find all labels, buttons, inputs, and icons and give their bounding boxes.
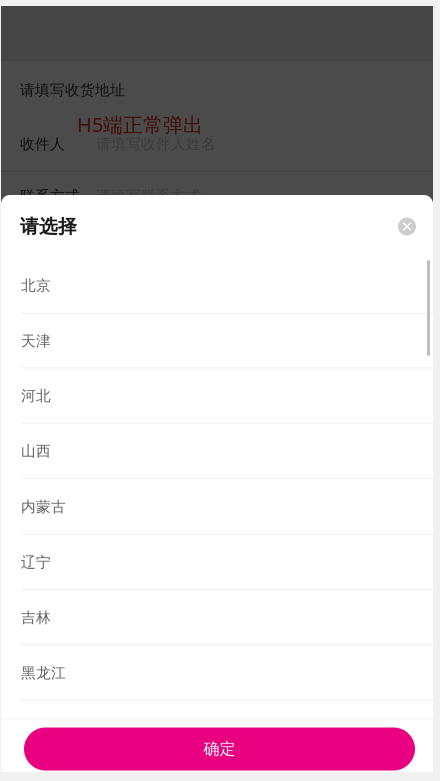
button[interactable]: 确定 bbox=[24, 727, 415, 770]
button[interactable]: 山西 bbox=[1, 423, 433, 479]
button[interactable]: 内蒙古 bbox=[1, 479, 433, 535]
staticText: 收件人 bbox=[20, 135, 65, 153]
staticText: 请填写收件人姓名 bbox=[96, 135, 216, 153]
staticText: H5端正常弹出 bbox=[77, 111, 203, 138]
staticText: 吉林 bbox=[21, 608, 51, 626]
staticText: 联系方式 bbox=[20, 187, 80, 205]
button[interactable]: 关闭 bbox=[390, 209, 424, 243]
staticText: 请选择 bbox=[20, 215, 77, 238]
button[interactable]: 辽宁 bbox=[1, 535, 433, 590]
staticText: 山西 bbox=[21, 442, 51, 460]
staticText: 请填写联系方式 bbox=[96, 187, 201, 205]
staticText: 河北 bbox=[21, 387, 51, 405]
staticText: 内蒙古 bbox=[21, 498, 66, 516]
staticText: 黑龙江 bbox=[21, 664, 66, 682]
staticText: 天津 bbox=[21, 332, 51, 350]
button[interactable]: 黑龙江 bbox=[1, 645, 433, 701]
button[interactable]: 北京 bbox=[1, 257, 433, 314]
staticText: 北京 bbox=[21, 277, 51, 295]
staticText: 辽宁 bbox=[21, 553, 51, 571]
staticText: 请填写收货地址 bbox=[20, 81, 125, 99]
button[interactable]: 吉林 bbox=[1, 590, 433, 645]
button[interactable]: 天津 bbox=[1, 314, 433, 368]
button[interactable]: 河北 bbox=[1, 368, 433, 423]
staticText: 确定 bbox=[203, 739, 235, 759]
